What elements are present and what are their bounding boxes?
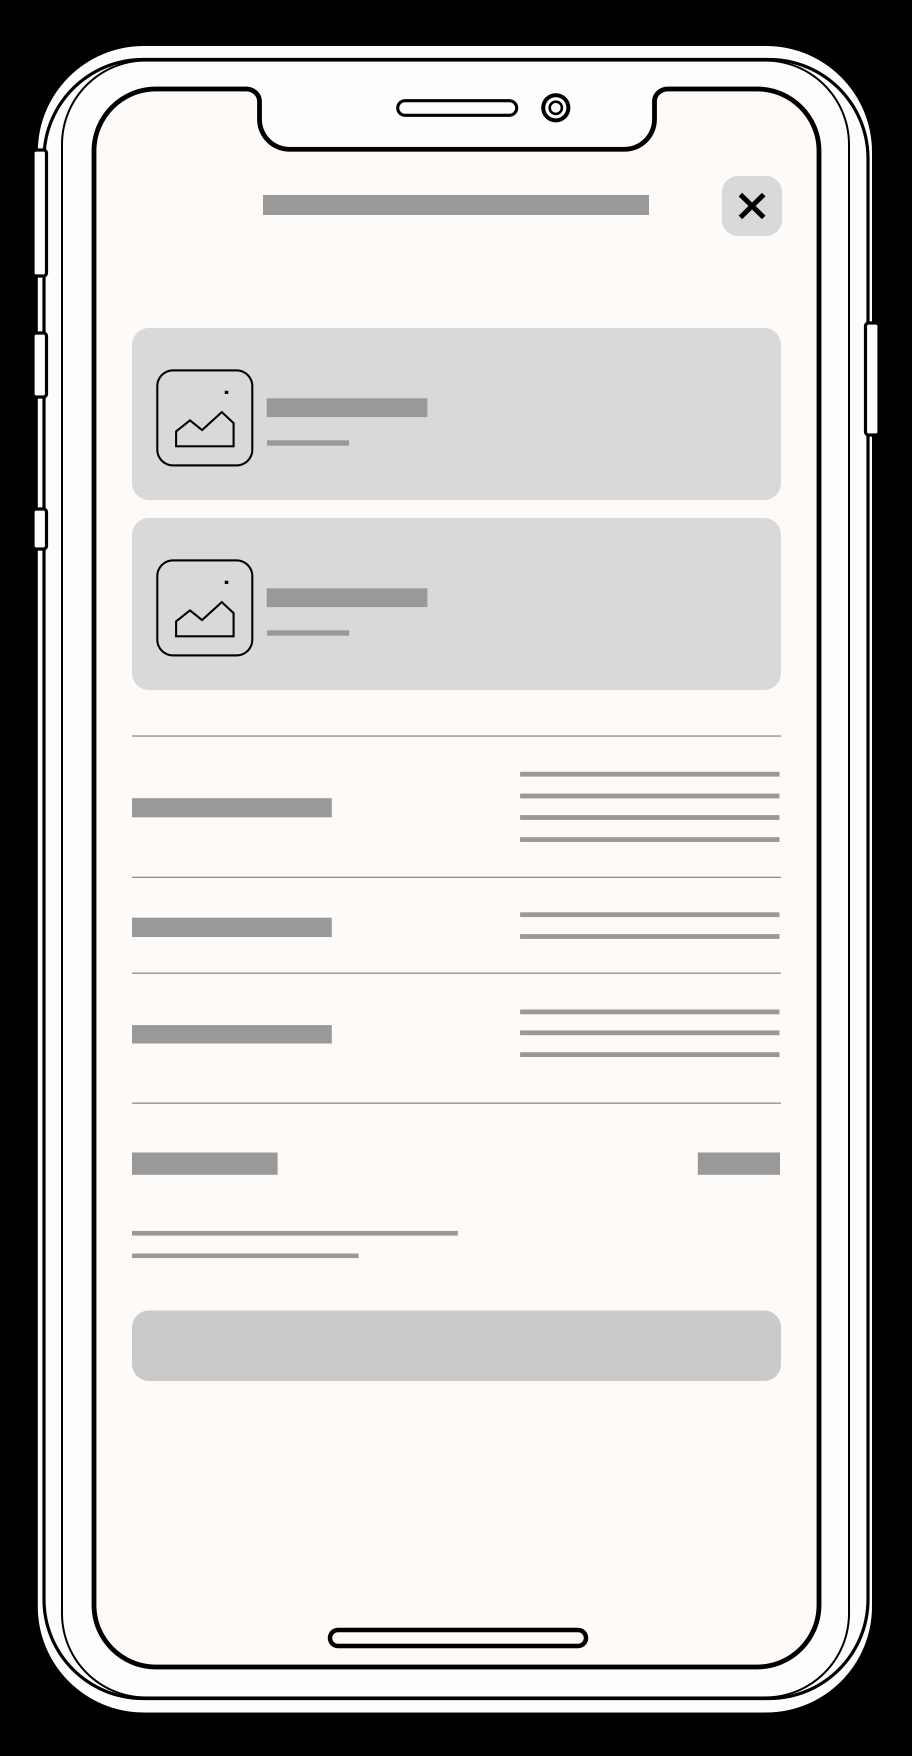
button[interactable] (0, 0, 912, 1756)
button[interactable] (0, 0, 912, 1756)
button[interactable]: Close (0, 0, 912, 1756)
button[interactable] (0, 0, 912, 1756)
